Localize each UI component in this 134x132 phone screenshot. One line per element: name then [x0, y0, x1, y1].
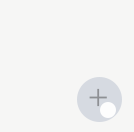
- button[interactable]: Add: [77, 77, 122, 122]
